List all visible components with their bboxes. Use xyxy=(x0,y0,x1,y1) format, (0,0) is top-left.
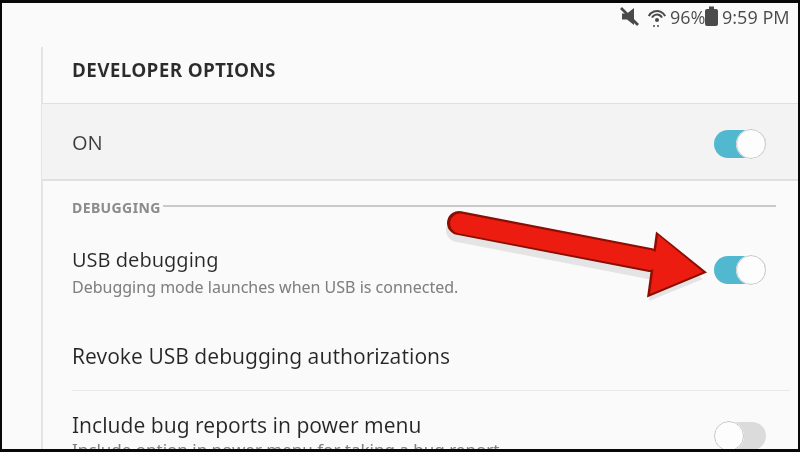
staticText: DEVELOPER OPTIONS xyxy=(72,57,276,83)
staticText: 9:59 PM xyxy=(722,5,790,30)
button[interactable] xyxy=(714,129,766,159)
staticText: Include bug reports in power menu xyxy=(72,411,422,440)
button[interactable] xyxy=(714,421,766,451)
staticText: Revoke USB debugging authorizations xyxy=(72,342,451,371)
button[interactable] xyxy=(714,255,766,285)
staticText: USB debugging xyxy=(72,246,219,273)
staticText: DEBUGGING xyxy=(72,198,161,217)
staticText: ON xyxy=(72,129,103,156)
button[interactable] xyxy=(42,235,798,307)
staticText: Debugging mode launches when USB is conn… xyxy=(72,276,459,298)
staticText: 96% xyxy=(670,5,706,30)
staticText: Include option in power menu for taking … xyxy=(72,438,500,452)
button[interactable] xyxy=(42,104,798,180)
button[interactable] xyxy=(42,325,798,387)
button[interactable] xyxy=(42,395,798,452)
